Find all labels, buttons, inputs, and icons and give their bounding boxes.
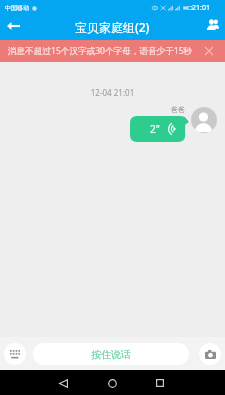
staticText: 中国移动 — [5, 4, 29, 12]
button[interactable]: Back — [52, 372, 74, 394]
staticText: 21:01 — [192, 3, 210, 13]
button[interactable]: Home — [101, 372, 123, 394]
staticText: 2" — [150, 122, 160, 136]
button[interactable]: Recents — [149, 372, 171, 394]
button[interactable]: Group members — [200, 13, 224, 37]
button[interactable]: Camera — [199, 343, 221, 365]
button[interactable]: Keyboard — [4, 343, 26, 365]
button[interactable]: Back — [0, 14, 26, 38]
staticText: 12-04 21:01 — [0, 87, 225, 98]
staticText: 消息不超过15个汉字或30个字母，语音少于15秒 — [8, 45, 193, 57]
button[interactable]: 按住说话 — [33, 343, 189, 365]
button[interactable]: 2" — [130, 116, 189, 142]
button[interactable]: Avatar — [191, 107, 217, 133]
staticText: 按住说话 — [91, 348, 131, 361]
staticText: 宝贝家庭组(2) — [75, 19, 150, 35]
button[interactable]: Close — [198, 40, 220, 62]
staticText: 爸爸 — [171, 105, 185, 114]
